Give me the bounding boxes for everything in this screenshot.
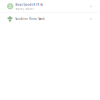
staticText: Basic Goods 878 ks <box>15 3 42 7</box>
staticText: Sunshine Retro Sandi <box>15 17 45 21</box>
button[interactable]: Sunshine Retro Sandi <box>0 13 100 25</box>
button[interactable]: Basic Goods 878 ks <box>0 0 100 13</box>
staticText: stores, stores <box>15 7 33 11</box>
